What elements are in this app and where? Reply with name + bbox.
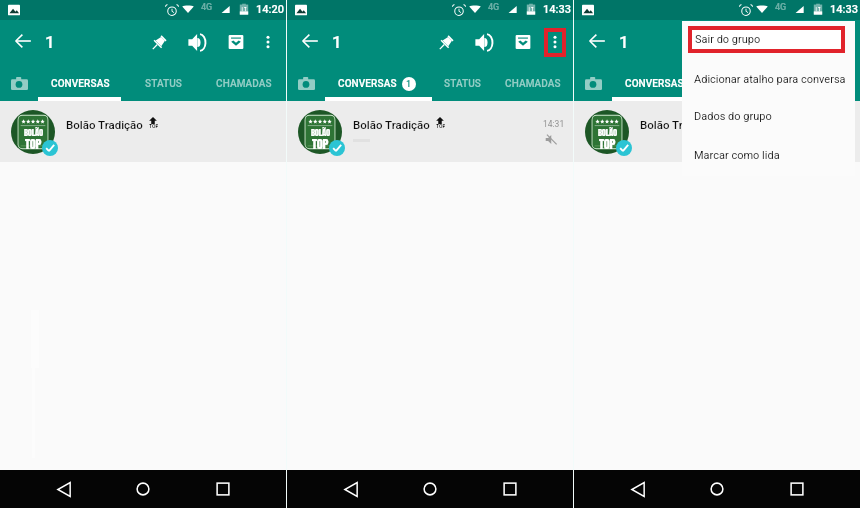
staticText: BOLÃO	[598, 126, 617, 139]
button[interactable]: Camera	[288, 64, 325, 101]
staticText: 14:31	[543, 119, 565, 129]
staticText: CONVERSAS	[51, 78, 110, 90]
button[interactable]: STATUS	[123, 64, 203, 101]
button[interactable]: More options	[250, 24, 286, 60]
button[interactable]: CHAMADAS	[202, 64, 286, 101]
button[interactable]: Marcar como lida	[682, 141, 855, 169]
staticText: STATUS	[145, 78, 182, 90]
button[interactable]: BOLÃO	[0, 101, 286, 162]
button[interactable]: Back	[579, 24, 615, 60]
staticText: 1	[619, 32, 629, 52]
staticText: CONVERSAS	[625, 78, 684, 90]
button[interactable]: Unmute	[466, 24, 502, 60]
staticText: BOLÃO	[311, 126, 330, 139]
staticText: Bolão Tradição	[66, 118, 143, 131]
button[interactable]: CONVERSAS	[612, 64, 695, 101]
button[interactable]: Pin	[141, 24, 177, 60]
staticText: CHAMADAS	[790, 78, 846, 90]
button[interactable]: Recent apps	[775, 470, 819, 508]
staticText: TOP	[25, 134, 42, 153]
button[interactable]: Home	[695, 470, 739, 508]
staticText: Sair do grupo	[695, 33, 761, 46]
staticText: TOP	[312, 134, 329, 153]
button[interactable]: BOLÃO	[574, 101, 860, 162]
button[interactable]: Back	[616, 470, 660, 508]
button[interactable]: CHAMADAS	[491, 64, 575, 101]
staticText: TOP	[149, 123, 158, 129]
button[interactable]: More options	[824, 24, 860, 60]
staticText: Adicionar atalho para conversa	[694, 73, 846, 86]
staticText: BOLÃO	[24, 126, 43, 139]
staticText: Marcar como lida	[694, 149, 780, 162]
staticText: CHAMADAS	[216, 78, 272, 90]
staticText: 1	[406, 79, 412, 90]
button[interactable]: Archive	[792, 24, 828, 60]
button[interactable]: Camera	[1, 64, 38, 101]
button[interactable]: Archive	[218, 24, 254, 60]
button[interactable]: Sair do grupo	[692, 30, 841, 49]
button[interactable]: STATUS	[422, 64, 502, 101]
button[interactable]: Unmute	[753, 24, 789, 60]
button[interactable]: Dados do grupo	[682, 102, 855, 130]
button[interactable]: Recent apps	[201, 470, 245, 508]
button[interactable]: Unmute	[179, 24, 215, 60]
staticText: 14:33	[830, 3, 858, 16]
button[interactable]: Back	[292, 24, 328, 60]
button[interactable]: More options	[537, 24, 573, 60]
staticText: Bolão Tradição	[640, 118, 717, 131]
staticText: Dados do grupo	[694, 110, 772, 123]
staticText: CHAMADAS	[505, 78, 561, 90]
staticText: Bolão Tradição	[353, 118, 430, 131]
staticText: 4G	[488, 2, 500, 13]
button[interactable]: Back	[5, 24, 41, 60]
button[interactable]: Pin	[428, 24, 464, 60]
button[interactable]: STATUS	[697, 64, 777, 101]
button[interactable]: CONVERSAS	[325, 64, 432, 101]
button[interactable]: CONVERSAS	[38, 64, 121, 101]
button[interactable]: Recent apps	[488, 470, 532, 508]
button[interactable]: Camera	[575, 64, 612, 101]
staticText: CONVERSAS	[338, 78, 397, 90]
staticText: 1	[45, 32, 55, 52]
staticText: 4G	[775, 2, 787, 13]
button[interactable]: CHAMADAS	[776, 64, 860, 101]
button[interactable]: Back	[42, 470, 86, 508]
button[interactable]: Home	[408, 470, 452, 508]
button[interactable]: Back	[329, 470, 373, 508]
button[interactable]: Home	[121, 470, 165, 508]
staticText: STATUS	[719, 78, 756, 90]
button[interactable]: BOLÃO	[287, 101, 573, 162]
staticText: 1	[332, 32, 342, 52]
button[interactable]: Archive	[505, 24, 541, 60]
staticText: TOP	[599, 134, 616, 153]
button[interactable]: Pin	[715, 24, 751, 60]
staticText: TOP	[436, 123, 445, 129]
staticText: 14:20	[256, 3, 284, 16]
staticText: 14:33	[543, 3, 571, 16]
staticText: 4G	[201, 2, 213, 13]
staticText: STATUS	[444, 78, 481, 90]
button[interactable]: Adicionar atalho para conversa	[682, 65, 855, 93]
